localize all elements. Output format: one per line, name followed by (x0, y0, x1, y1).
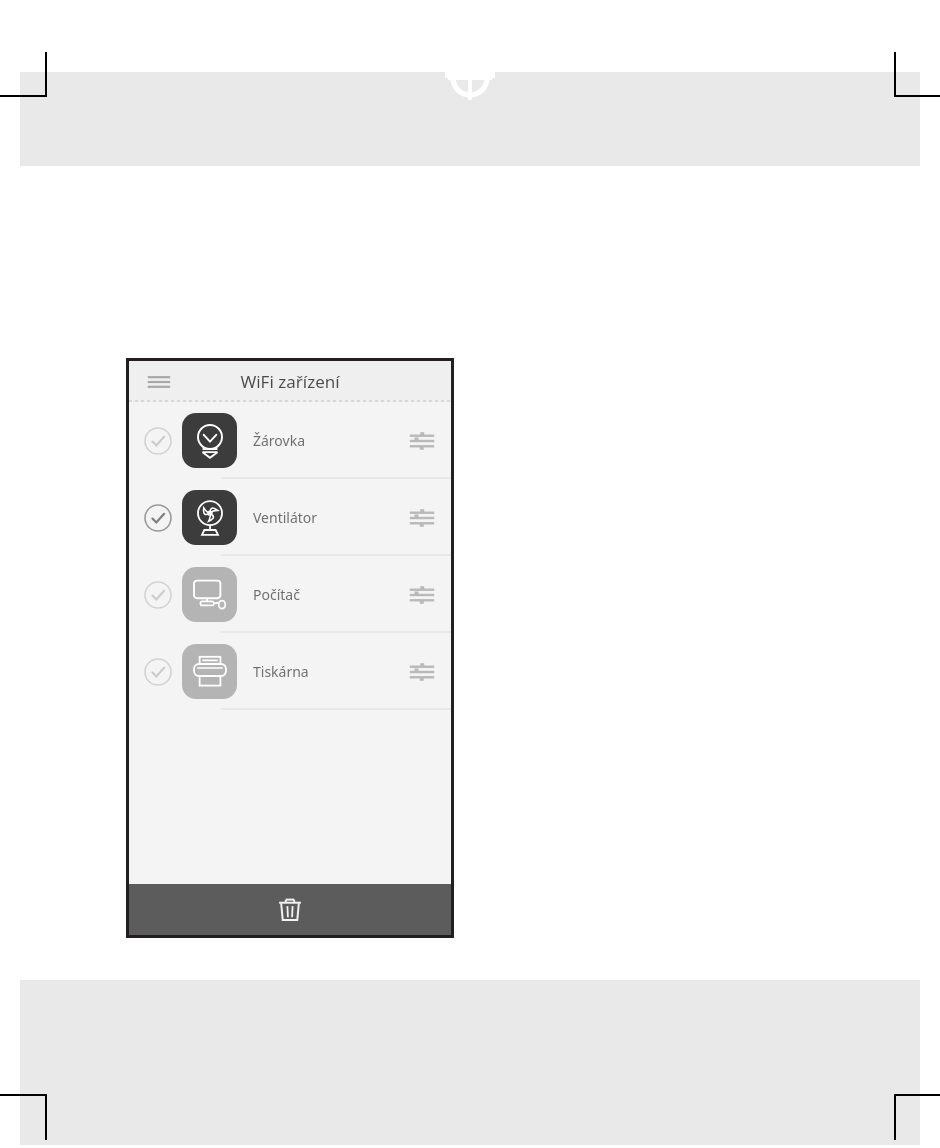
staticText: Počítač (253, 585, 405, 604)
button[interactable]: Not selected (144, 581, 172, 609)
button[interactable]: Settings for Tiskárna (405, 655, 439, 689)
button[interactable]: Selected (144, 504, 172, 532)
button[interactable]: Not selected (129, 633, 451, 710)
staticText: Žárovka (253, 431, 405, 450)
button[interactable] (182, 413, 237, 468)
button[interactable] (182, 644, 237, 699)
staticText: Ventilátor (253, 508, 405, 527)
button[interactable] (182, 490, 237, 545)
button[interactable]: Not selected (144, 658, 172, 686)
button[interactable] (182, 567, 237, 622)
button[interactable]: Not selected (129, 556, 451, 633)
button[interactable]: Delete (129, 884, 451, 935)
button[interactable]: Settings for Žárovka (405, 424, 439, 458)
button[interactable]: Settings for Ventilátor (405, 501, 439, 535)
button[interactable]: Settings for Počítač (405, 578, 439, 612)
button[interactable]: Not selected (144, 427, 172, 455)
button[interactable]: Selected (129, 479, 451, 556)
staticText: WiFi zařízení (240, 370, 340, 393)
button[interactable]: Not selected (129, 402, 451, 479)
staticText: Tiskárna (253, 662, 405, 681)
button[interactable]: Menu (139, 362, 179, 402)
